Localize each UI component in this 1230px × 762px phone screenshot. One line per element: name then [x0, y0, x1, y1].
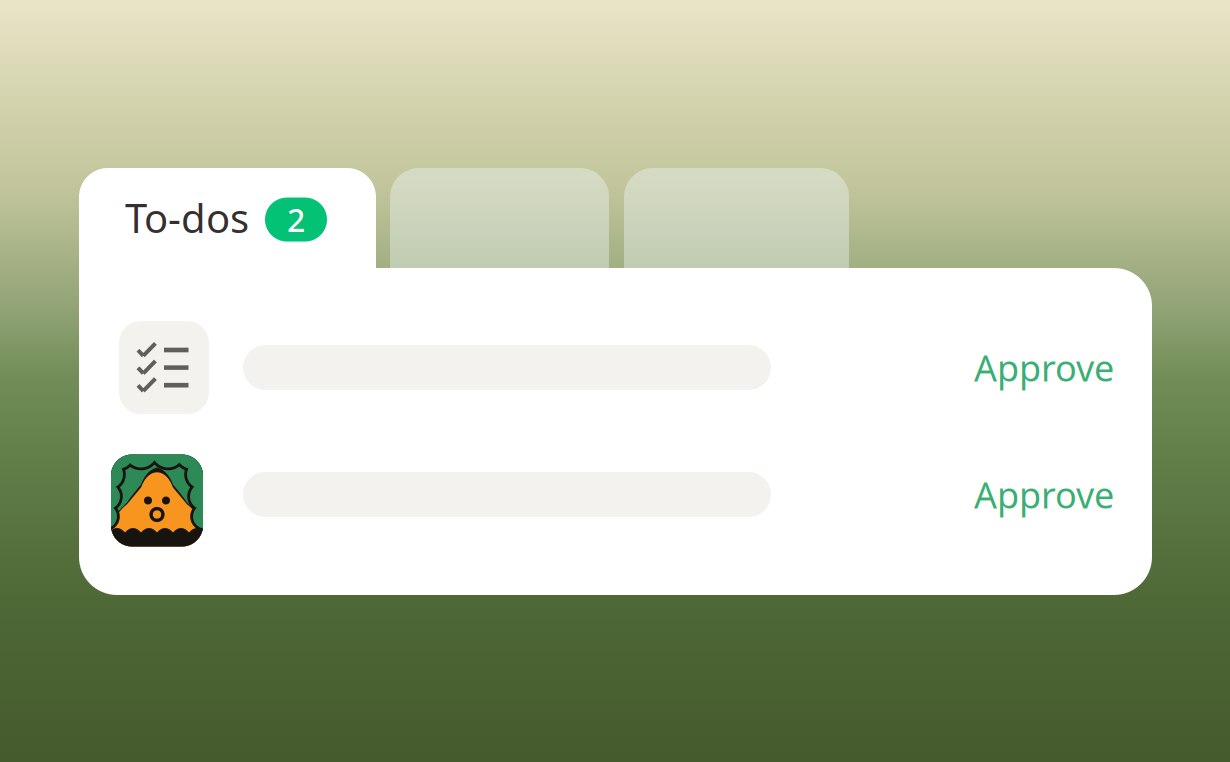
button[interactable]: Checklist to-do — [119, 321, 209, 414]
staticText: Approve — [974, 344, 1114, 391]
button[interactable]: Third tab — [624, 168, 849, 308]
button[interactable]: Teammate to-do — [119, 448, 209, 541]
button[interactable]: Approve — [960, 332, 1128, 403]
staticText: 2 — [287, 198, 305, 241]
button[interactable]: To-dos — [79, 168, 376, 318]
button[interactable]: Second tab — [390, 168, 609, 308]
button[interactable]: Approve — [960, 459, 1128, 530]
staticText: Approve — [974, 471, 1114, 518]
staticText: To-dos — [125, 191, 249, 244]
